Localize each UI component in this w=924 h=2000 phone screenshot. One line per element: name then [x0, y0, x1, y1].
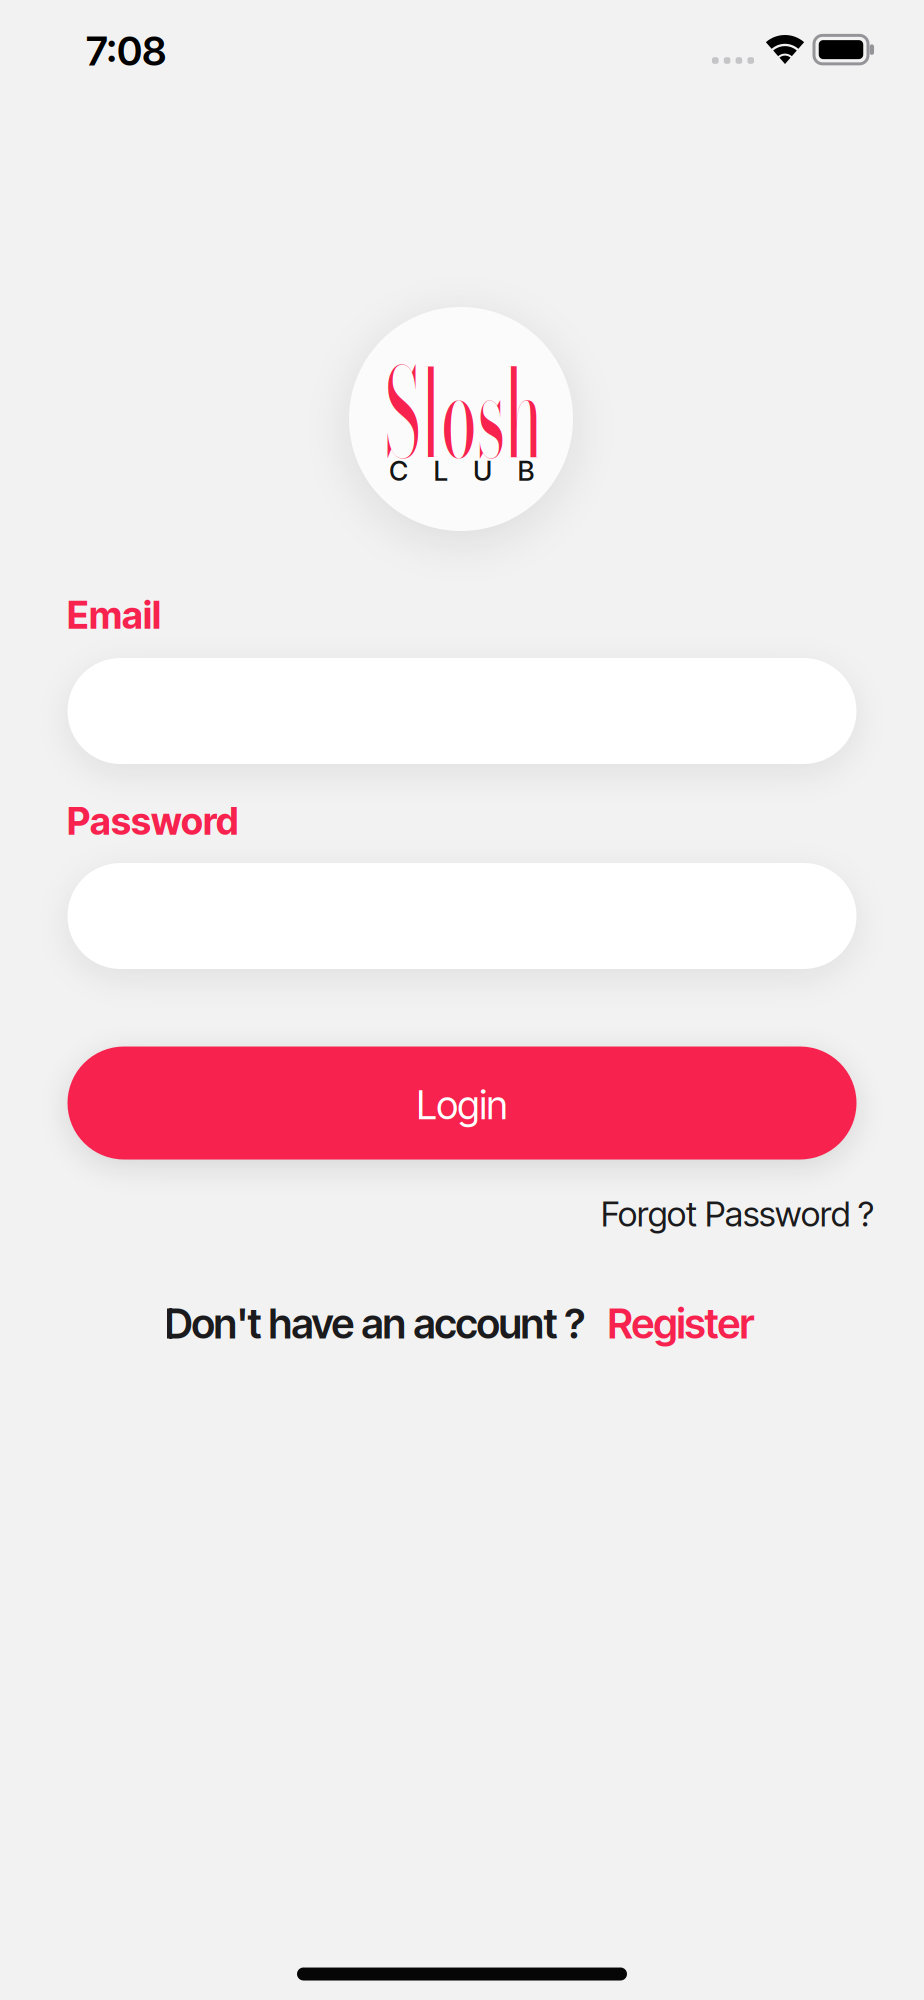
staticText: Email — [67, 592, 161, 638]
staticText: Register — [607, 1299, 754, 1348]
staticText: Password — [67, 798, 238, 844]
button[interactable]: Register — [607, 1299, 754, 1348]
staticText: Login — [416, 1081, 507, 1129]
staticText: CLUB — [389, 455, 535, 487]
staticText: Don't have an account ? — [164, 1299, 585, 1348]
staticText: Forgot Password ? — [601, 1193, 874, 1235]
button[interactable]: Login — [67, 1046, 856, 1159]
button[interactable]: Forgot Password ? — [601, 1193, 874, 1235]
staticText: 7:08 — [86, 27, 166, 75]
staticText: Slosh — [315, 320, 612, 505]
button[interactable]: Password — [67, 863, 856, 969]
button[interactable]: Email — [67, 658, 856, 764]
